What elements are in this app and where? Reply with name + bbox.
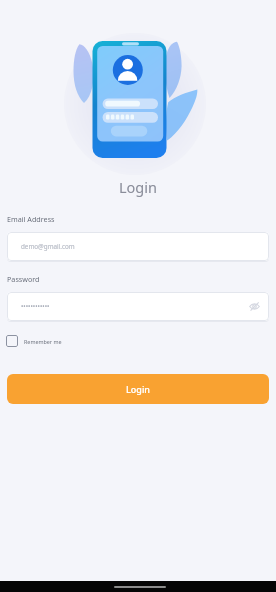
staticText: Login bbox=[126, 383, 150, 395]
button[interactable]: Login bbox=[7, 374, 269, 404]
staticText: •••••••••••• bbox=[21, 302, 50, 311]
staticText: Remember me bbox=[24, 338, 62, 345]
button[interactable]: Show password bbox=[248, 300, 261, 313]
button[interactable]: demo@gmail.com bbox=[7, 232, 269, 261]
staticText: Password bbox=[7, 274, 40, 284]
button[interactable]: •••••••••••• bbox=[7, 292, 269, 321]
staticText: Email Address bbox=[7, 214, 55, 224]
staticText: Login bbox=[119, 177, 157, 197]
button[interactable]: Remember me bbox=[6, 334, 62, 348]
staticText: demo@gmail.com bbox=[21, 242, 75, 251]
